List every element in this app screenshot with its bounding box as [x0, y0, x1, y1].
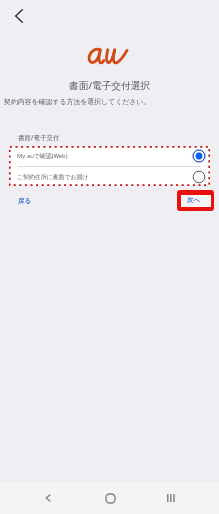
button[interactable]: Back	[33, 483, 63, 513]
staticText: 次へ	[187, 196, 200, 204]
staticText: 書面/電子交付選択	[69, 79, 151, 92]
staticText: 戻る	[18, 197, 31, 205]
button[interactable]: Back	[6, 3, 31, 28]
button[interactable]: 次へ	[181, 195, 211, 207]
button[interactable]: My auで確認(Web)	[9, 146, 210, 166]
button[interactable]: Recent apps	[156, 483, 186, 513]
staticText: My auで確認(Web)	[17, 152, 68, 160]
button[interactable]: ご契約住所に書面でお届け	[9, 167, 210, 186]
staticText: 書面/電子交付	[18, 133, 60, 142]
staticText: ご契約住所に書面でお届け	[17, 173, 89, 180]
button[interactable]: Home	[95, 483, 125, 513]
button[interactable]: 戻る	[12, 192, 37, 210]
staticText: 契約内容を確認する方法を選択してください。	[4, 97, 151, 106]
